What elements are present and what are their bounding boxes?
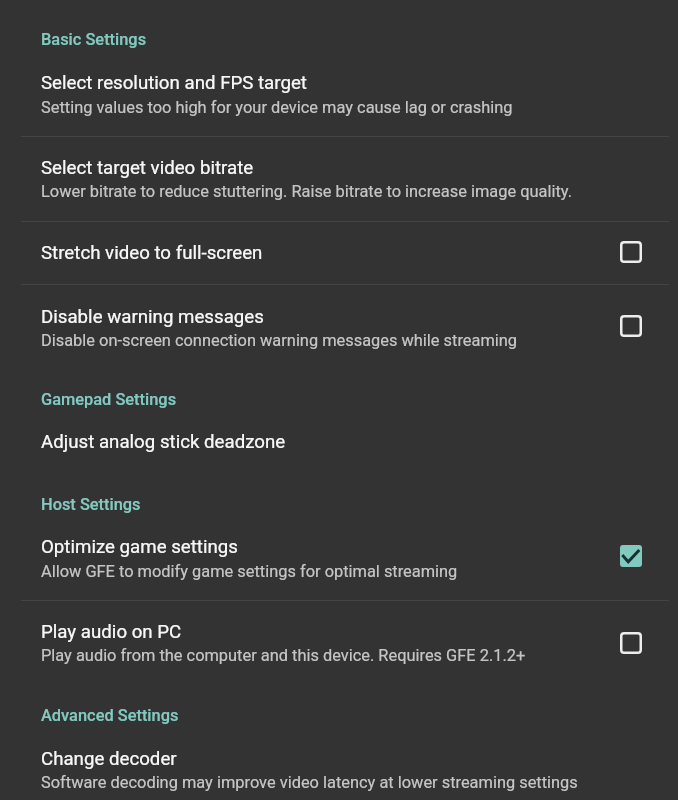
- button[interactable]: Play audio on PC, not checked: [620, 632, 642, 654]
- button[interactable]: Adjust analog stick deadzone: [0, 411, 678, 473]
- staticText: Advanced Settings: [41, 706, 179, 725]
- staticText: Optimize game settings: [41, 536, 238, 558]
- staticText: Setting values too high for your device …: [41, 98, 513, 117]
- button[interactable]: Select target video bitrate: [0, 137, 678, 221]
- staticText: Gamepad Settings: [41, 390, 177, 409]
- staticText: Adjust analog stick deadzone: [41, 431, 286, 453]
- staticText: Select resolution and FPS target: [41, 72, 307, 94]
- button[interactable]: Select resolution and FPS target: [0, 52, 678, 136]
- staticText: Stretch video to full-screen: [41, 242, 263, 264]
- button[interactable]: Change decoder: [0, 727, 678, 800]
- staticText: Lower bitrate to reduce stuttering. Rais…: [41, 182, 572, 201]
- button[interactable]: Disable warning messages: [0, 285, 678, 368]
- button[interactable]: Optimize game settings: [0, 516, 678, 600]
- staticText: Allow GFE to modify game settings for op…: [41, 562, 458, 581]
- staticText: Play audio from the computer and this de…: [41, 646, 526, 665]
- staticText: Software decoding may improve video late…: [41, 773, 578, 792]
- staticText: Play audio on PC: [41, 621, 182, 643]
- staticText: Disable warning messages: [41, 306, 264, 328]
- button[interactable]: Disable warning messages, not checked: [620, 315, 642, 337]
- button[interactable]: Stretch video to full-screen, not checke…: [620, 241, 642, 263]
- staticText: Basic Settings: [41, 30, 147, 49]
- staticText: Select target video bitrate: [41, 157, 254, 179]
- button[interactable]: Optimize game settings, checked: [620, 545, 642, 567]
- staticText: Disable on-screen connection warning mes…: [41, 331, 518, 350]
- button[interactable]: Play audio on PC: [0, 601, 678, 685]
- staticText: Host Settings: [41, 495, 141, 514]
- staticText: Change decoder: [41, 748, 177, 770]
- button[interactable]: Stretch video to full-screen: [0, 222, 678, 285]
